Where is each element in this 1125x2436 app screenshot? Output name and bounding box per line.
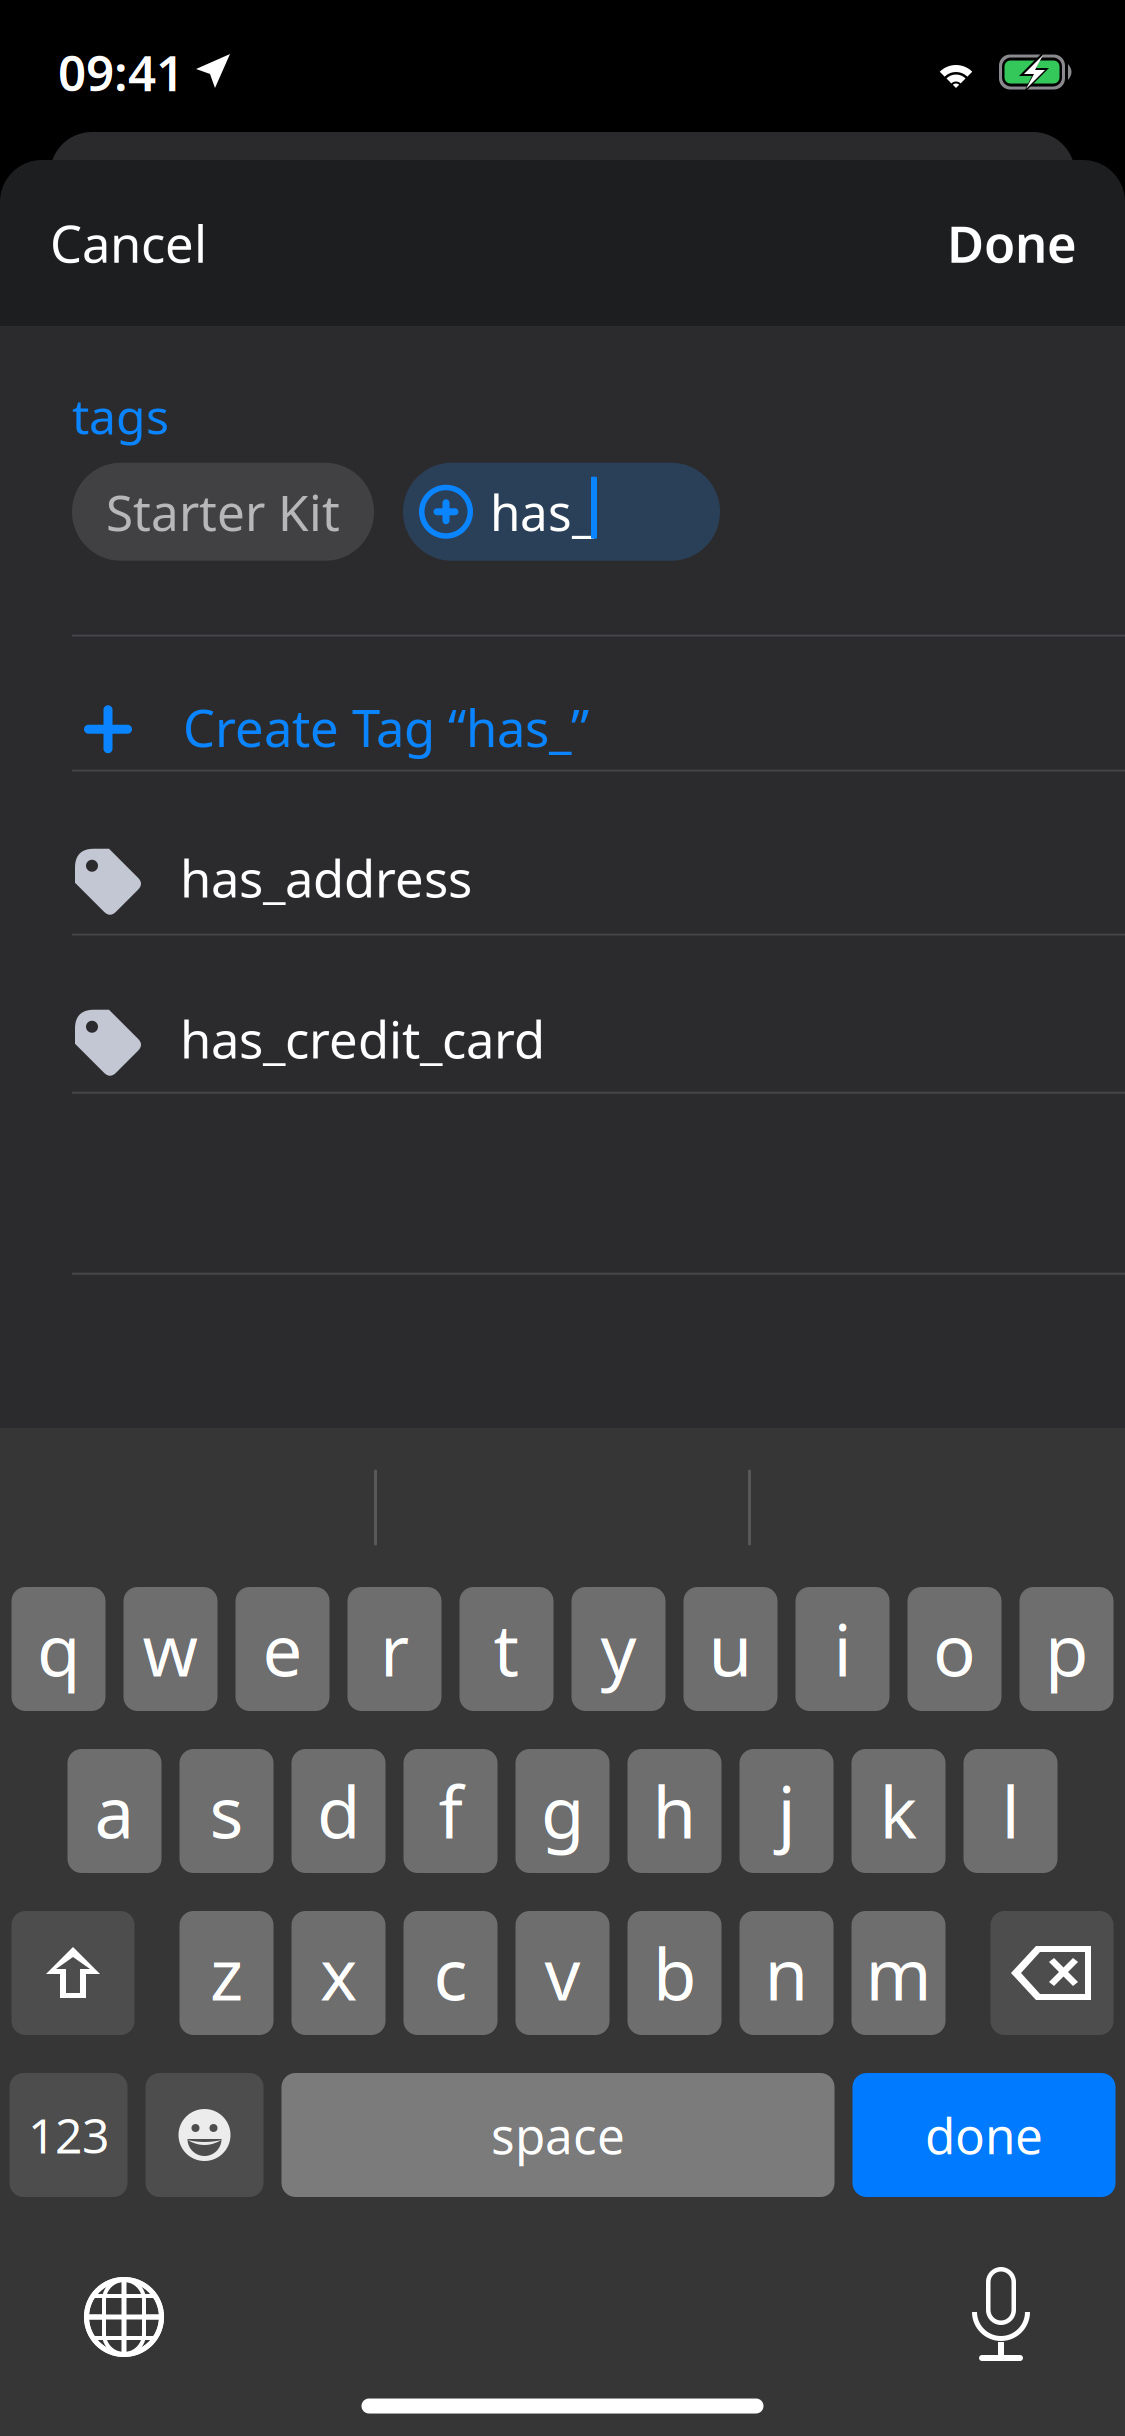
button[interactable]: t [459, 1587, 553, 1711]
staticText: Starter Kit [106, 479, 340, 544]
staticText: a [94, 1764, 134, 1858]
button[interactable]: e [235, 1587, 329, 1711]
button[interactable]: v [515, 1911, 609, 2035]
staticText: e [262, 1602, 302, 1696]
button[interactable]: q [11, 1587, 105, 1711]
button[interactable]: b [627, 1911, 721, 2035]
button[interactable]: done [852, 2073, 1115, 2197]
staticText: t [493, 1602, 519, 1696]
button[interactable]: Starter Kit [72, 463, 374, 561]
button[interactable]: d [291, 1749, 385, 1873]
staticText: done [925, 2102, 1043, 2168]
button[interactable]: has_credit_card [0, 936, 1125, 1094]
staticText: has_credit_card [180, 1005, 545, 1072]
button[interactable]: g [515, 1749, 609, 1873]
staticText: w [142, 1602, 198, 1696]
staticText: tags [72, 384, 169, 448]
staticText: Create Tag “has_” [183, 694, 589, 761]
button[interactable]: r [347, 1587, 441, 1711]
button[interactable]: Dictate [955, 2271, 1047, 2363]
button[interactable]: x [291, 1911, 385, 2035]
staticText: j [777, 1764, 795, 1858]
button[interactable]: n [739, 1911, 833, 2035]
staticText: s [209, 1764, 243, 1858]
staticText: n [764, 1926, 808, 2020]
staticText: x [320, 1926, 357, 2020]
staticText: k [879, 1764, 917, 1858]
staticText: o [933, 1602, 976, 1696]
staticText: z [210, 1926, 243, 2020]
staticText: c [433, 1926, 467, 2020]
staticText: i [833, 1602, 851, 1696]
button[interactable]: Done [947, 198, 1077, 288]
staticText: f [438, 1764, 462, 1858]
staticText: r [380, 1602, 409, 1696]
button[interactable]: z [179, 1911, 273, 2035]
button[interactable]: j [739, 1749, 833, 1873]
button[interactable]: Next keyboard [78, 2271, 170, 2363]
staticText: q [37, 1602, 80, 1696]
staticText: Cancel [50, 209, 207, 277]
button[interactable]: c [403, 1911, 497, 2035]
staticText: space [491, 2102, 625, 2168]
button[interactable]: y [571, 1587, 665, 1711]
button[interactable]: space [281, 2073, 834, 2197]
button[interactable]: Shift [11, 1911, 134, 2035]
staticText: has_ [490, 479, 594, 544]
staticText: b [653, 1926, 696, 2020]
staticText: l [1001, 1764, 1019, 1858]
staticText: p [1045, 1602, 1088, 1696]
button[interactable]: Delete [990, 1911, 1113, 2035]
staticText: v [544, 1926, 580, 2020]
staticText: g [541, 1764, 584, 1858]
staticText: has_address [180, 844, 472, 911]
button[interactable]: a [67, 1749, 161, 1873]
staticText: h [652, 1764, 696, 1858]
button[interactable]: w [123, 1587, 217, 1711]
button[interactable]: p [1019, 1587, 1113, 1711]
button[interactable]: Cancel [50, 198, 207, 288]
button[interactable]: Create Tag “has_” [0, 637, 1125, 772]
staticText: d [317, 1764, 360, 1858]
button[interactable]: l [963, 1749, 1057, 1873]
staticText: 09:41 [58, 39, 184, 105]
staticText: 123 [28, 2103, 109, 2167]
button[interactable]: has_address [0, 772, 1125, 936]
button[interactable]: o [907, 1587, 1001, 1711]
button[interactable]: s [179, 1749, 273, 1873]
button[interactable]: Emoji [145, 2073, 263, 2197]
button[interactable]: 123 [9, 2073, 127, 2197]
button[interactable]: i [795, 1587, 889, 1711]
staticText: m [865, 1926, 931, 2020]
button[interactable]: k [851, 1749, 945, 1873]
button[interactable]: u [683, 1587, 777, 1711]
button[interactable]: h [627, 1749, 721, 1873]
staticText: Done [947, 209, 1077, 277]
staticText: u [708, 1602, 752, 1696]
button[interactable]: m [851, 1911, 945, 2035]
button[interactable]: f [403, 1749, 497, 1873]
button[interactable]: has_ [403, 463, 720, 561]
staticText: y [600, 1602, 636, 1696]
